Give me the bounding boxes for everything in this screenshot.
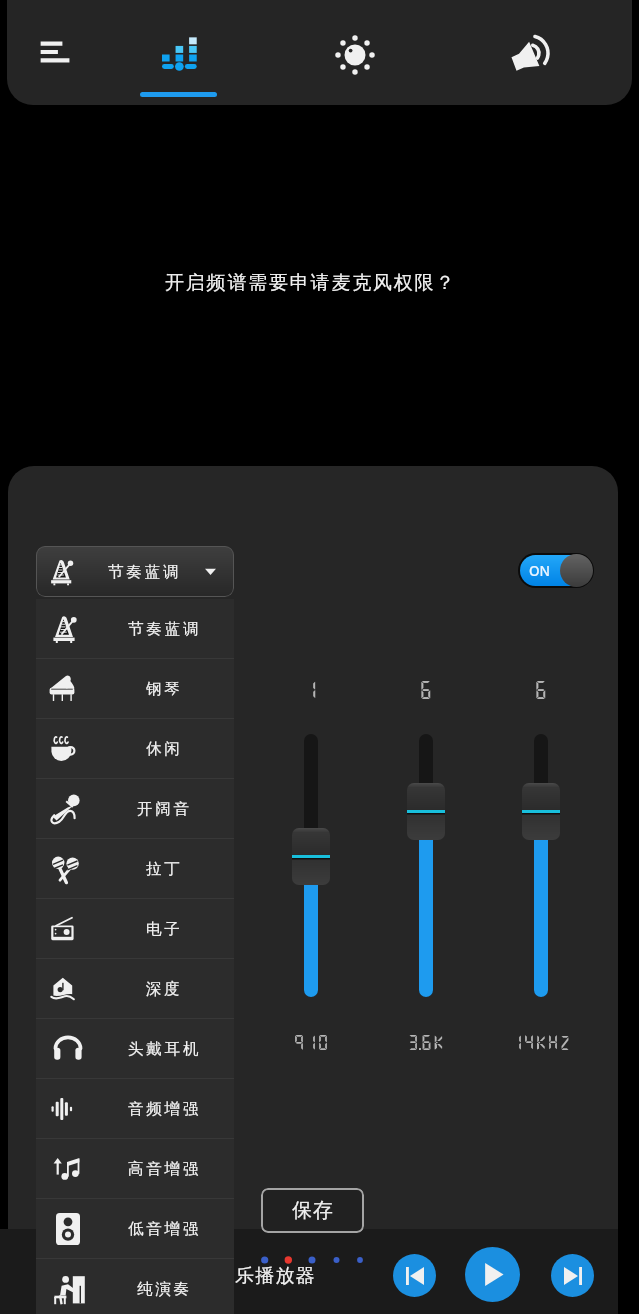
staticText: 节奏蓝调 — [108, 562, 182, 582]
button[interactable]: Menu — [20, 16, 92, 88]
staticText: 1 — [304, 678, 318, 700]
button[interactable]: Next — [551, 1254, 594, 1297]
staticText: 音频增强 — [128, 1099, 202, 1119]
staticText: 开启频谱需要申请麦克风权限？ — [165, 271, 457, 295]
button[interactable]: 开阔音 — [36, 779, 234, 838]
staticText: 拉丁 — [146, 859, 183, 879]
staticText: 910 — [293, 1032, 330, 1051]
staticText: 乐播放器 — [235, 1264, 316, 1288]
button[interactable]: Band slider — [292, 828, 330, 885]
button[interactable]: 电子 — [36, 899, 234, 958]
staticText: 开阔音 — [137, 799, 192, 819]
button[interactable]: 钢琴 — [36, 659, 234, 718]
staticText: 纯演奏 — [137, 1279, 192, 1299]
staticText: ON — [529, 562, 551, 580]
button[interactable]: 纯演奏 — [36, 1259, 234, 1314]
button[interactable]: 深度 — [36, 959, 234, 1018]
button[interactable]: 头戴耳机 — [36, 1019, 234, 1078]
button[interactable]: Volume — [495, 17, 567, 89]
button[interactable]: 节奏蓝调 — [36, 599, 234, 658]
button[interactable]: Previous — [393, 1254, 436, 1297]
button[interactable]: 休闲 — [36, 719, 234, 778]
button[interactable]: Equalizer — [132, 0, 242, 105]
button[interactable]: 低音增强 — [36, 1199, 234, 1258]
staticText: 休闲 — [146, 739, 183, 759]
staticText: 电子 — [146, 919, 183, 939]
button[interactable]: 高音增强 — [36, 1139, 234, 1198]
button[interactable]: 音频增强 — [36, 1079, 234, 1138]
staticText: 6 — [534, 678, 548, 700]
staticText: 6 — [419, 678, 433, 700]
staticText: 14KHZ — [511, 1032, 572, 1051]
staticText: 3.6K — [407, 1032, 445, 1051]
staticText: 保存 — [292, 1198, 333, 1223]
button[interactable]: Power toggle — [518, 553, 594, 588]
button[interactable]: 拉丁 — [36, 839, 234, 898]
staticText: 高音增强 — [128, 1159, 202, 1179]
staticText: 头戴耳机 — [128, 1039, 202, 1059]
staticText: 低音增强 — [128, 1219, 202, 1239]
button[interactable]: 保存 — [261, 1188, 364, 1233]
button[interactable]: Play — [465, 1247, 520, 1302]
button[interactable]: Band slider — [522, 783, 560, 840]
button[interactable]: Band slider — [407, 783, 445, 840]
staticText: 深度 — [146, 979, 183, 999]
button[interactable]: Effects — [319, 19, 391, 91]
button[interactable]: 节奏蓝调 — [36, 546, 234, 597]
staticText: 钢琴 — [146, 679, 183, 699]
staticText: 节奏蓝调 — [128, 619, 202, 639]
